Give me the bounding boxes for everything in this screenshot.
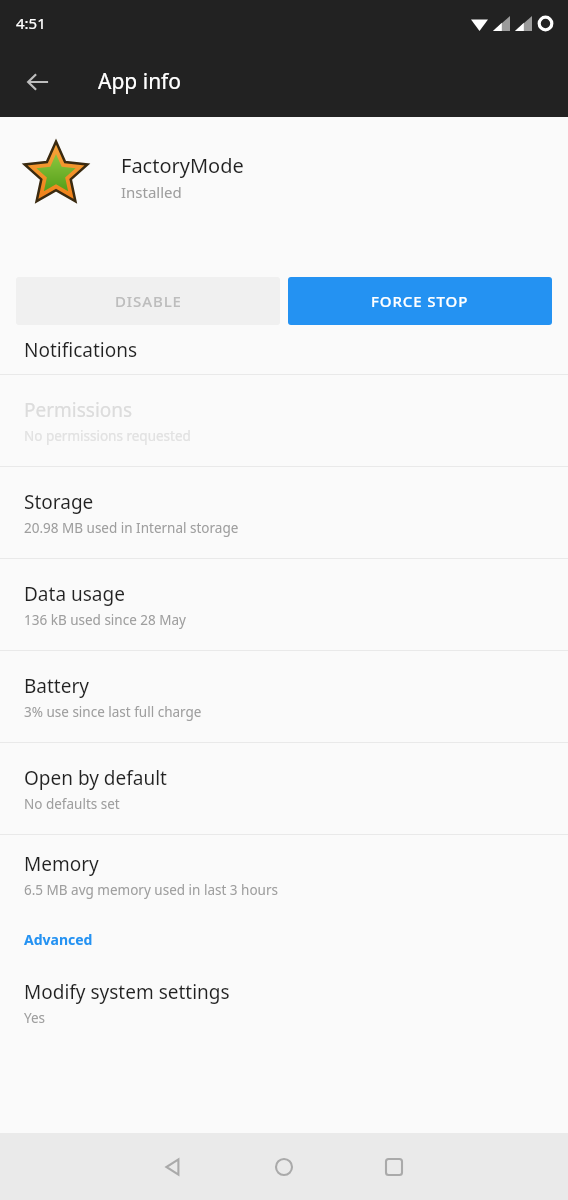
staticText: FactoryMode: [121, 152, 244, 179]
staticText: Permissions: [24, 397, 133, 423]
button[interactable]: Back: [119, 1133, 229, 1200]
button[interactable]: Permissions: [0, 375, 568, 466]
staticText: No defaults set: [24, 795, 120, 813]
button[interactable]: Storage: [0, 467, 568, 558]
button[interactable]: Back: [14, 58, 62, 106]
button[interactable]: Open by default: [0, 743, 568, 834]
staticText: FORCE STOP: [371, 291, 469, 311]
staticText: 4:51: [16, 13, 46, 33]
button[interactable]: Data usage: [0, 559, 568, 650]
staticText: Installed: [121, 182, 182, 202]
staticText: Storage: [24, 489, 94, 515]
staticText: DISABLE: [115, 291, 182, 311]
staticText: Data usage: [24, 581, 125, 607]
staticText: Notifications: [24, 337, 138, 363]
button[interactable]: Battery: [0, 651, 568, 742]
staticText: Open by default: [24, 765, 167, 791]
staticText: Battery: [24, 673, 89, 699]
button[interactable]: Recent apps: [339, 1133, 449, 1200]
staticText: Yes: [24, 1009, 46, 1027]
staticText: 3% use since last full charge: [24, 703, 202, 721]
staticText: Advanced: [24, 930, 93, 949]
button[interactable]: FORCE STOP: [288, 277, 552, 325]
staticText: 20.98 MB used in Internal storage: [24, 519, 239, 537]
staticText: 136 kB used since 28 May: [24, 611, 186, 629]
button[interactable]: Advanced: [0, 915, 568, 963]
button[interactable]: Home: [229, 1133, 339, 1200]
staticText: No permissions requested: [24, 427, 191, 445]
button[interactable]: DISABLE: [16, 277, 280, 325]
staticText: Memory: [24, 851, 99, 877]
button[interactable]: Memory: [0, 835, 568, 915]
staticText: 6.5 MB avg memory used in last 3 hours: [24, 881, 278, 899]
button[interactable]: Modify system settings: [0, 963, 568, 1043]
staticText: App info: [98, 67, 182, 96]
staticText: Modify system settings: [24, 979, 230, 1005]
button[interactable]: Notifications: [0, 325, 568, 374]
